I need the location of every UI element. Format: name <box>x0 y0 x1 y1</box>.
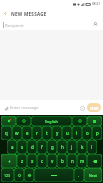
button[interactable]: o <box>82 126 92 140</box>
button[interactable]: k <box>77 140 87 154</box>
button[interactable]: h <box>57 140 67 154</box>
staticText: Recipient <box>5 22 24 28</box>
button[interactable]: SEND <box>87 103 101 112</box>
button[interactable]: w <box>12 126 22 140</box>
button[interactable] <box>1 116 16 126</box>
button[interactable]: m <box>77 154 87 168</box>
staticText: v <box>51 158 54 164</box>
staticText: f <box>41 144 43 150</box>
staticText: SEND <box>90 106 99 110</box>
staticText: 08:21 <box>92 2 101 6</box>
button[interactable]: p <box>92 126 102 140</box>
button[interactable] <box>24 168 34 182</box>
button[interactable]: d <box>27 140 37 154</box>
button[interactable]: r <box>32 126 42 140</box>
staticText: n <box>71 158 74 164</box>
button[interactable]: t <box>42 126 52 140</box>
staticText: b <box>61 158 64 164</box>
button[interactable]: . <box>74 168 84 182</box>
button[interactable]: a <box>7 140 17 154</box>
staticText: . <box>78 172 80 178</box>
button[interactable]: Emoji <box>78 104 86 112</box>
staticText: q <box>5 130 8 136</box>
button[interactable]: Attach file <box>2 104 10 112</box>
staticText: i <box>76 130 78 136</box>
button[interactable] <box>16 116 31 126</box>
staticText: s <box>21 144 24 150</box>
button[interactable]: 123 <box>1 168 14 182</box>
staticText: u <box>66 130 69 136</box>
staticText: o <box>86 130 89 136</box>
staticText: e <box>26 130 29 136</box>
button[interactable]: v <box>47 154 57 168</box>
button[interactable] <box>14 168 24 182</box>
button[interactable]: i <box>72 126 82 140</box>
button[interactable]: Back <box>0 8 11 19</box>
staticText: k <box>81 144 84 150</box>
staticText: m <box>80 158 85 164</box>
staticText: 123 <box>4 173 11 178</box>
button[interactable]: n <box>67 154 77 168</box>
button[interactable]: f <box>37 140 47 154</box>
staticText: r <box>36 130 38 136</box>
button[interactable]: l <box>87 140 97 154</box>
button[interactable]: c <box>37 154 47 168</box>
button[interactable]: Next <box>84 168 102 182</box>
staticText: Next <box>89 173 97 178</box>
staticText: w <box>15 130 19 136</box>
staticText: h <box>61 144 64 150</box>
button[interactable]: u <box>62 126 72 140</box>
button[interactable]: q <box>1 126 12 140</box>
button[interactable]: b <box>57 154 67 168</box>
staticText: t <box>46 130 48 136</box>
button[interactable] <box>72 116 87 126</box>
staticText: l <box>91 144 93 150</box>
button[interactable] <box>34 168 74 182</box>
button[interactable]: z <box>17 154 27 168</box>
staticText: a <box>11 144 14 150</box>
staticText: p <box>96 130 99 136</box>
staticText: y <box>56 130 59 136</box>
button[interactable] <box>87 116 102 126</box>
button[interactable]: e <box>22 126 32 140</box>
staticText: j <box>71 144 73 150</box>
staticText: g <box>51 144 54 150</box>
staticText: z <box>21 158 24 164</box>
staticText: d <box>31 144 34 150</box>
button[interactable]: g <box>47 140 57 154</box>
staticText: x <box>31 158 34 164</box>
button[interactable]: English <box>31 116 72 126</box>
button[interactable] <box>87 154 102 168</box>
staticText: Enter message <box>10 105 39 111</box>
button[interactable]: Open contacts <box>91 20 100 29</box>
staticText: NEW MESSAGE <box>11 11 47 17</box>
button[interactable]: s <box>17 140 27 154</box>
staticText: c <box>41 158 44 164</box>
button[interactable]: x <box>27 154 37 168</box>
button[interactable]: y <box>52 126 62 140</box>
button[interactable]: j <box>67 140 77 154</box>
button[interactable] <box>1 154 17 168</box>
staticText: English <box>45 119 58 124</box>
